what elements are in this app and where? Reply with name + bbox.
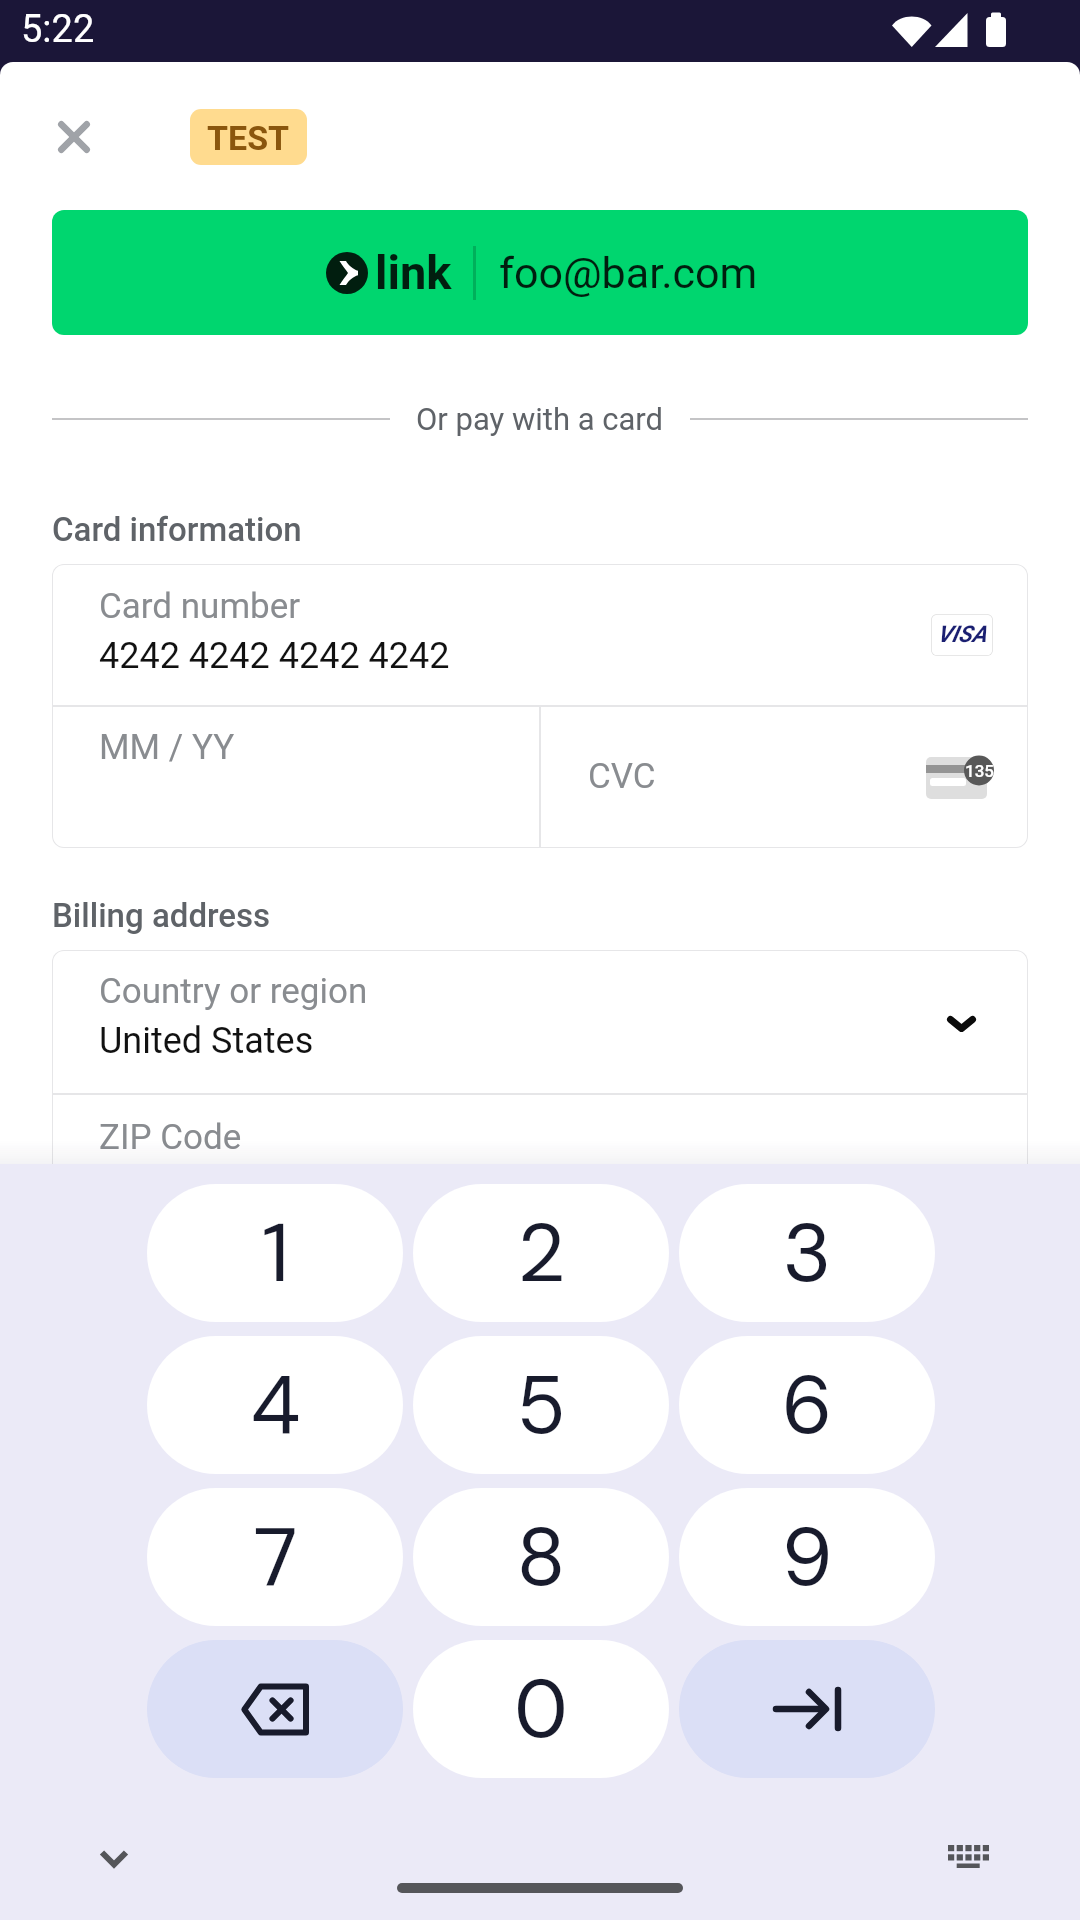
button[interactable]: 9 — [679, 1488, 935, 1626]
staticText: foo@bar.com — [499, 248, 758, 298]
staticText: Card information — [52, 510, 302, 549]
staticText: Billing address — [52, 896, 271, 935]
button[interactable]: 4 — [147, 1336, 403, 1474]
button[interactable]: TEST — [190, 109, 307, 165]
button[interactable]: 6 — [679, 1336, 935, 1474]
staticText: Country or region — [99, 971, 368, 1012]
staticText: 4 — [250, 1352, 301, 1459]
button[interactable]: 3 — [679, 1184, 935, 1322]
staticText: 7 — [253, 1504, 298, 1611]
button[interactable]: Card number — [52, 564, 1028, 705]
staticText: Or pay with a card — [416, 401, 664, 437]
button[interactable]: 5 — [413, 1336, 669, 1474]
button[interactable]: MM / YY — [52, 707, 539, 848]
button[interactable]: 7 — [147, 1488, 403, 1626]
staticText: 135 — [965, 761, 994, 781]
staticText: 3 — [782, 1200, 832, 1307]
staticText: Card number — [99, 586, 301, 627]
button[interactable]: 0 — [413, 1640, 669, 1778]
button[interactable]: Country or region — [52, 950, 1028, 1093]
staticText: CVC — [588, 756, 656, 797]
staticText: 8 — [516, 1504, 566, 1611]
staticText: 9 — [781, 1504, 833, 1611]
button[interactable]: 2 — [413, 1184, 669, 1322]
staticText: MM / YY — [99, 727, 235, 768]
staticText: 0 — [514, 1656, 568, 1763]
button[interactable]: ZIP Code — [52, 1095, 1028, 1190]
button[interactable]: 1 — [147, 1184, 403, 1322]
staticText: 5 — [516, 1352, 566, 1459]
button[interactable]: Switch keyboard — [940, 1828, 997, 1885]
staticText: link — [375, 245, 452, 300]
staticText: 5:22 — [21, 7, 95, 52]
staticText: United States — [99, 1020, 314, 1062]
staticText: 2 — [517, 1200, 566, 1307]
staticText: 1 — [261, 1200, 290, 1307]
staticText: 4242 4242 4242 4242 — [99, 635, 450, 677]
staticText: 6 — [781, 1352, 833, 1459]
button[interactable]: Next field — [679, 1640, 935, 1778]
button[interactable]: 8 — [413, 1488, 669, 1626]
button[interactable]: Hide keyboard — [85, 1830, 142, 1887]
staticText: ZIP Code — [99, 1117, 242, 1158]
staticText: TEST — [207, 118, 290, 158]
button[interactable]: CVC — [541, 707, 1028, 848]
button[interactable]: link — [52, 210, 1028, 335]
staticText: VISA — [937, 621, 987, 648]
button[interactable]: Backspace — [147, 1640, 403, 1778]
button[interactable]: Close — [45, 108, 102, 165]
